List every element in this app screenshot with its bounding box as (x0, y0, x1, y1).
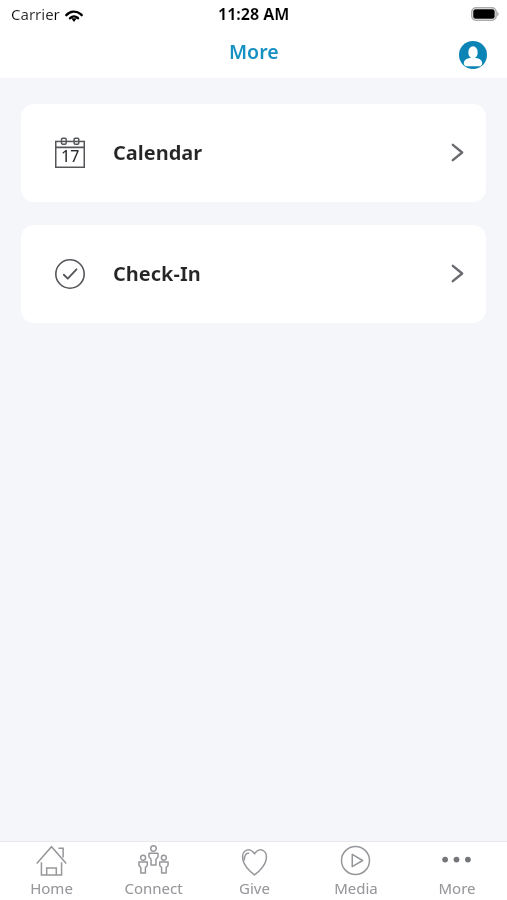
staticText: Carrier (11, 4, 60, 24)
button[interactable]: Give (204, 842, 305, 900)
button[interactable]: Profile (455, 36, 491, 72)
staticText: Calendar (113, 139, 203, 166)
staticText: More (229, 38, 279, 65)
button[interactable]: Connect (102, 842, 204, 900)
button[interactable]: Media (305, 842, 406, 900)
button[interactable]: Home (0, 842, 102, 900)
staticText: Connect (124, 878, 183, 898)
staticText: Media (334, 878, 378, 898)
staticText: 11:28 AM (218, 3, 290, 25)
button[interactable]: Check-In (21, 225, 486, 323)
staticText: Give (239, 878, 270, 898)
staticText: More (438, 878, 476, 898)
button[interactable]: More (406, 842, 507, 900)
staticText: Check-In (113, 260, 201, 287)
staticText: Home (30, 878, 73, 898)
button[interactable]: 17 (21, 104, 486, 202)
staticText: 17 (61, 145, 80, 167)
